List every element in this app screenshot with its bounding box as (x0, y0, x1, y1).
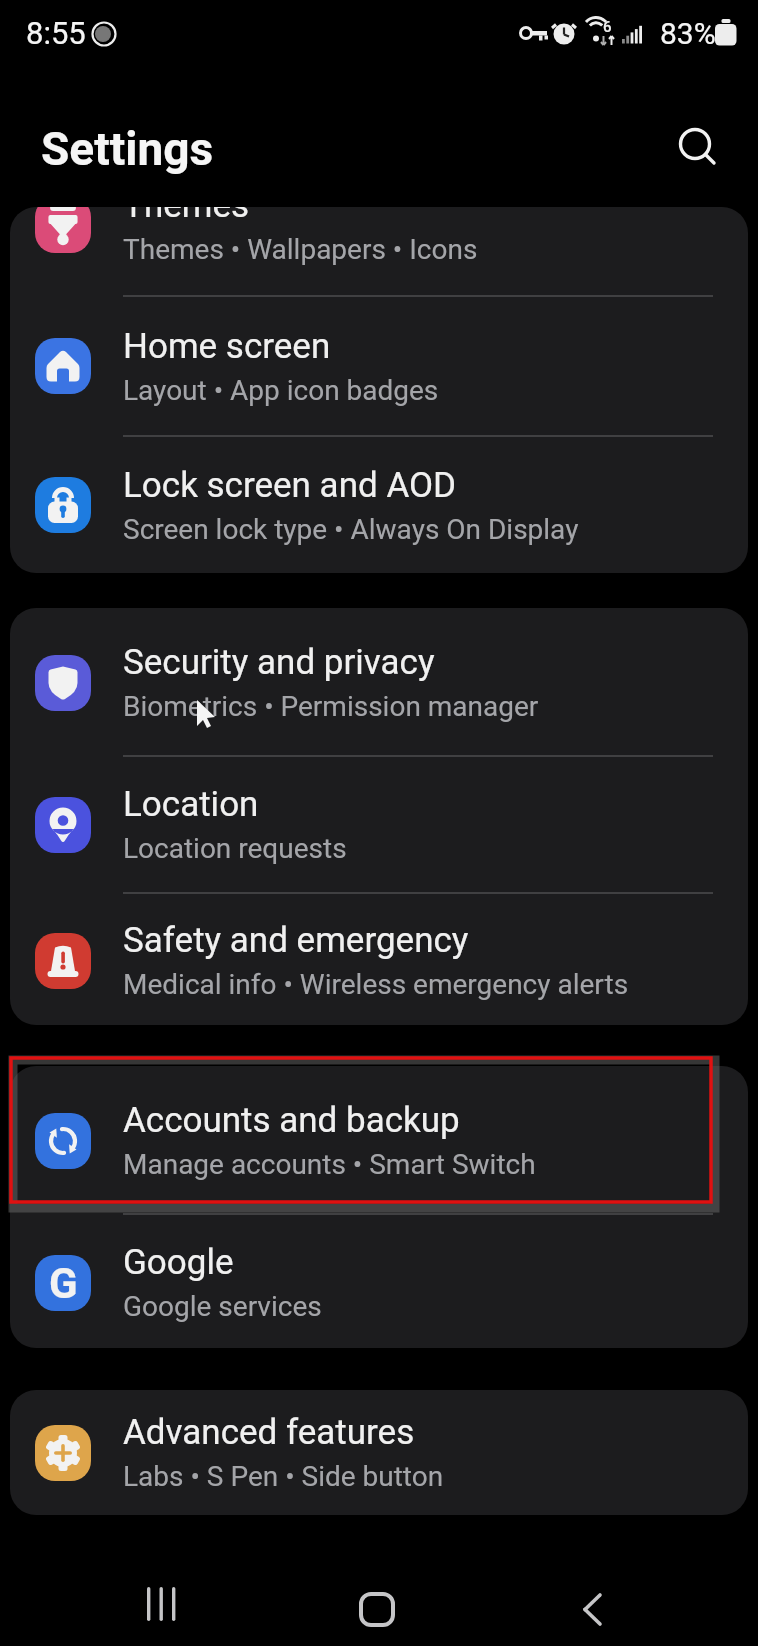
staticText: Screen lock type • Always On Display (123, 513, 579, 546)
button[interactable]: Home screen (10, 297, 748, 435)
staticText: Advanced features (123, 1412, 415, 1453)
button[interactable]: Location (10, 757, 748, 892)
button[interactable]: Safety and emergency (10, 894, 748, 1025)
staticText: Google (123, 1242, 234, 1283)
staticText: 6 (603, 18, 612, 36)
button[interactable]: G (10, 1215, 748, 1348)
button[interactable]: Advanced features (10, 1390, 748, 1515)
staticText: Themes • Wallpapers • Icons (123, 233, 478, 266)
staticText: Location (123, 784, 259, 825)
staticText: Accounts and backup (123, 1100, 460, 1141)
button[interactable] (130, 1575, 194, 1639)
staticText: G (49, 1259, 78, 1308)
button[interactable]: Security and privacy (10, 610, 748, 755)
button[interactable]: Lock screen and AOD (10, 437, 748, 573)
staticText: Lock screen and AOD (123, 465, 457, 506)
button[interactable] (560, 1575, 624, 1639)
staticText: 83% (660, 16, 716, 51)
staticText: Security and privacy (123, 642, 435, 683)
button[interactable] (668, 116, 728, 176)
staticText: Google services (123, 1290, 322, 1323)
staticText: Layout • App icon badges (123, 374, 439, 407)
staticText: Manage accounts • Smart Switch (123, 1148, 536, 1181)
button[interactable]: Accounts and backup (10, 1068, 748, 1213)
staticText: Location requests (123, 832, 347, 865)
staticText: 8:55 (26, 15, 86, 51)
button[interactable]: Themes (10, 207, 748, 295)
staticText: Safety and emergency (123, 920, 469, 961)
staticText: Home screen (123, 326, 331, 367)
staticText: Labs • S Pen • Side button (123, 1460, 444, 1493)
staticText: Themes (123, 207, 250, 226)
staticText: Settings (41, 122, 214, 176)
button[interactable] (345, 1575, 409, 1639)
staticText: Medical info • Wireless emergency alerts (123, 968, 629, 1001)
staticText: Biometrics • Permission manager (123, 690, 539, 723)
